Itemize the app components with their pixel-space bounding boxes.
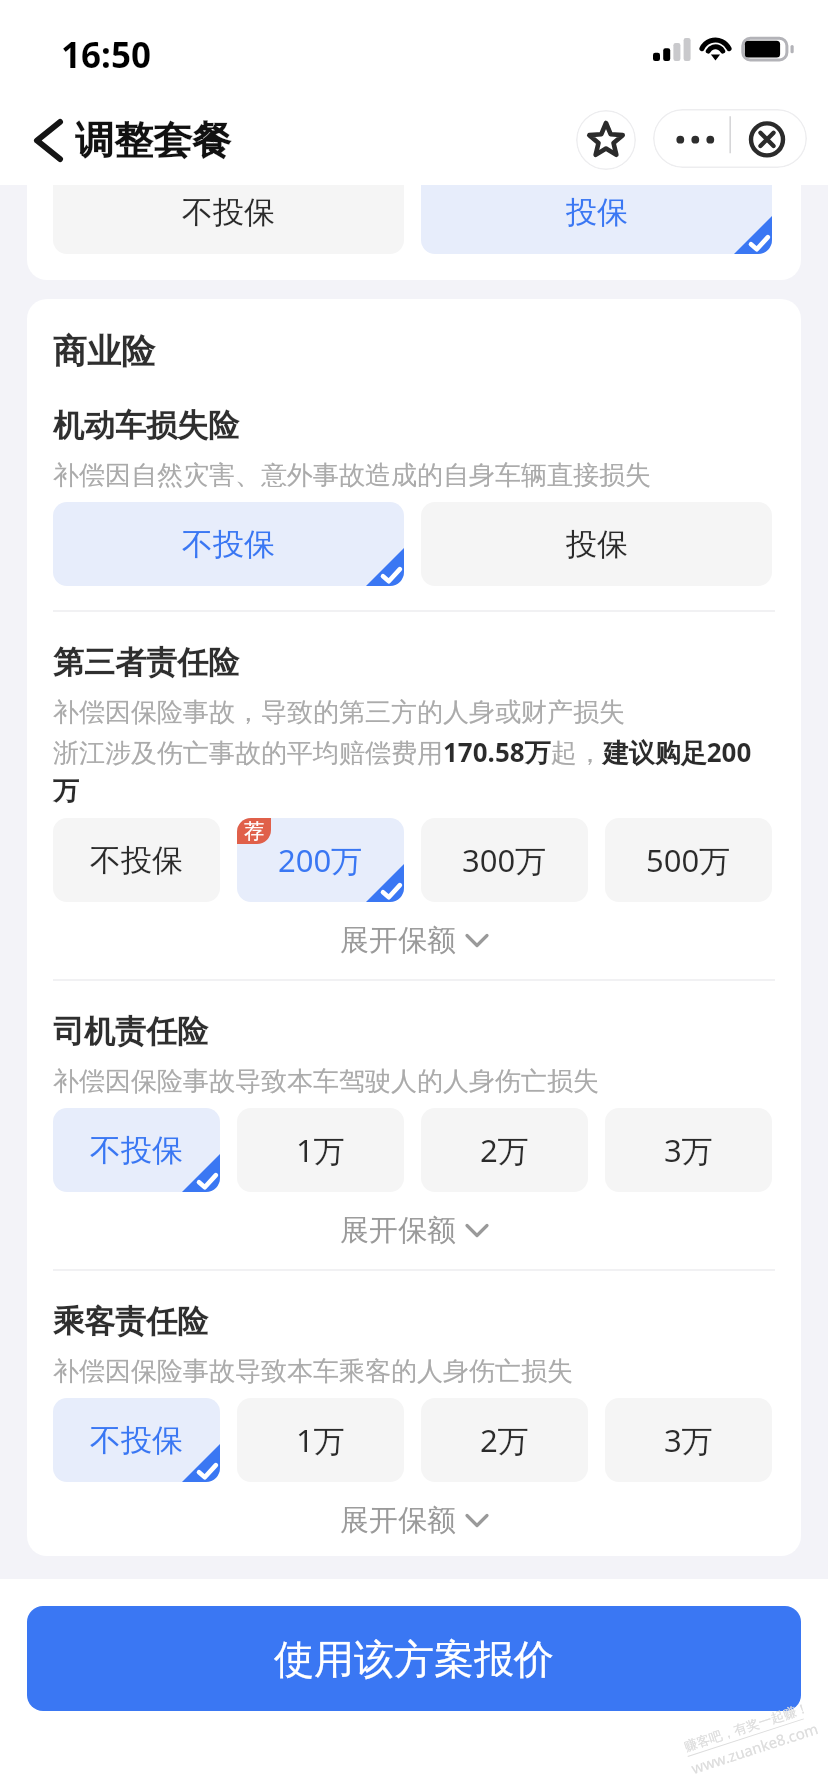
- staticText: 展开保额: [340, 922, 456, 959]
- button[interactable]: 展开保额: [53, 1206, 775, 1255]
- staticText: 300万: [462, 839, 547, 881]
- staticText: 2万: [480, 1419, 529, 1461]
- staticText: 1万: [296, 1129, 345, 1171]
- button[interactable]: More options: [653, 109, 730, 168]
- staticText: 补偿因保险事故，导致的第三方的人身或财产损失 浙江涉及伤亡事故的平均赔偿费用17…: [53, 696, 775, 808]
- button[interactable]: 200万: [237, 818, 404, 902]
- staticText: 商业险: [53, 330, 155, 373]
- staticText: 2万: [480, 1129, 529, 1171]
- staticText: 使用该方案报价: [274, 1634, 554, 1684]
- staticText: 16:50: [61, 31, 151, 79]
- staticText: 不投保: [90, 1131, 183, 1170]
- button[interactable]: 展开保额: [53, 916, 775, 965]
- staticText: 赚客吧，有奖一起赚！: [682, 1699, 811, 1754]
- button[interactable]: Favorite: [576, 110, 636, 170]
- button[interactable]: 展开保额: [53, 1496, 775, 1545]
- button[interactable]: 不投保: [53, 818, 220, 902]
- staticText: 乘客责任险: [53, 1302, 208, 1341]
- staticText: 1万: [296, 1419, 345, 1461]
- staticText: 机动车损失险: [53, 406, 239, 445]
- staticText: 200万: [278, 839, 363, 881]
- staticText: 调整套餐: [75, 116, 231, 165]
- button[interactable]: 3万: [605, 1108, 772, 1192]
- button[interactable]: Back: [30, 116, 239, 165]
- button[interactable]: 投保: [421, 185, 772, 254]
- other: Back: [34, 119, 63, 162]
- button[interactable]: 500万: [605, 818, 772, 902]
- button[interactable]: 1万: [237, 1108, 404, 1192]
- staticText: 不投保: [90, 841, 183, 880]
- button[interactable]: 3万: [605, 1398, 772, 1482]
- button[interactable]: 使用该方案报价: [27, 1606, 801, 1711]
- staticText: 补偿因保险事故导致本车驾驶人的人身伤亡损失: [53, 1065, 599, 1098]
- staticText: 不投保: [182, 193, 275, 232]
- button[interactable]: 不投保: [53, 502, 404, 586]
- button[interactable]: 不投保: [53, 1108, 220, 1192]
- staticText: 补偿因自然灾害、意外事故造成的自身车辆直接损失: [53, 459, 651, 492]
- button[interactable]: 2万: [421, 1108, 588, 1192]
- staticText: 荐: [244, 819, 264, 844]
- button[interactable]: 不投保: [53, 185, 404, 254]
- staticText: 展开保额: [340, 1502, 456, 1539]
- staticText: 3万: [664, 1419, 713, 1461]
- staticText: 3万: [664, 1129, 713, 1171]
- button[interactable]: 1万: [237, 1398, 404, 1482]
- button[interactable]: 2万: [421, 1398, 588, 1482]
- staticText: 投保: [566, 525, 628, 564]
- button[interactable]: 300万: [421, 818, 588, 902]
- staticText: 第三者责任险: [53, 643, 239, 682]
- staticText: 展开保额: [340, 1212, 456, 1249]
- staticText: 500万: [646, 839, 731, 881]
- staticText: 不投保: [182, 525, 275, 564]
- button[interactable]: Close: [730, 109, 807, 168]
- staticText: 司机责任险: [53, 1012, 208, 1051]
- staticText: 不投保: [90, 1421, 183, 1460]
- button[interactable]: 不投保: [53, 1398, 220, 1482]
- staticText: 补偿因保险事故导致本车乘客的人身伤亡损失: [53, 1355, 573, 1388]
- button[interactable]: 投保: [421, 502, 772, 586]
- staticText: 投保: [566, 193, 628, 232]
- staticText: www.zuanke8.com: [688, 1718, 821, 1778]
